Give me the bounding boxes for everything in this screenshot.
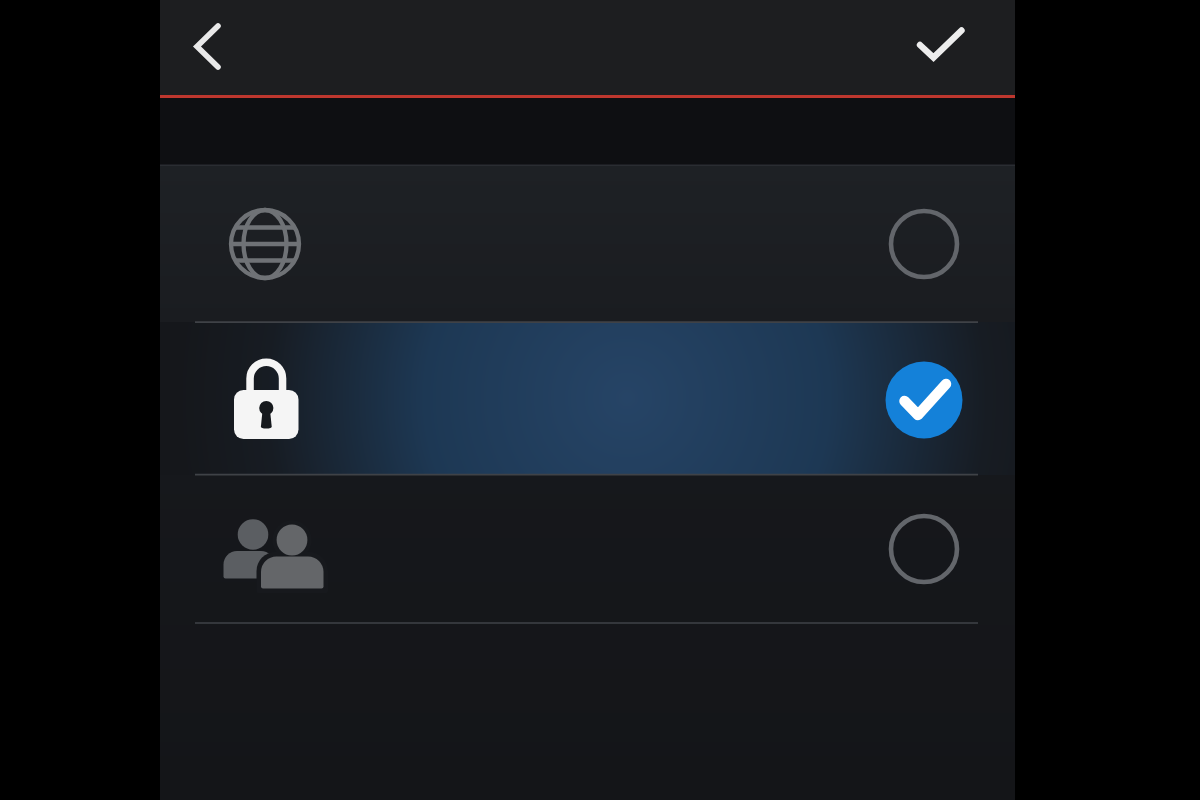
button[interactable] (160, 166, 1015, 322)
button[interactable] (170, 6, 248, 86)
button[interactable] (882, 4, 964, 88)
button[interactable] (160, 322, 1015, 475)
button[interactable] (160, 475, 1015, 623)
